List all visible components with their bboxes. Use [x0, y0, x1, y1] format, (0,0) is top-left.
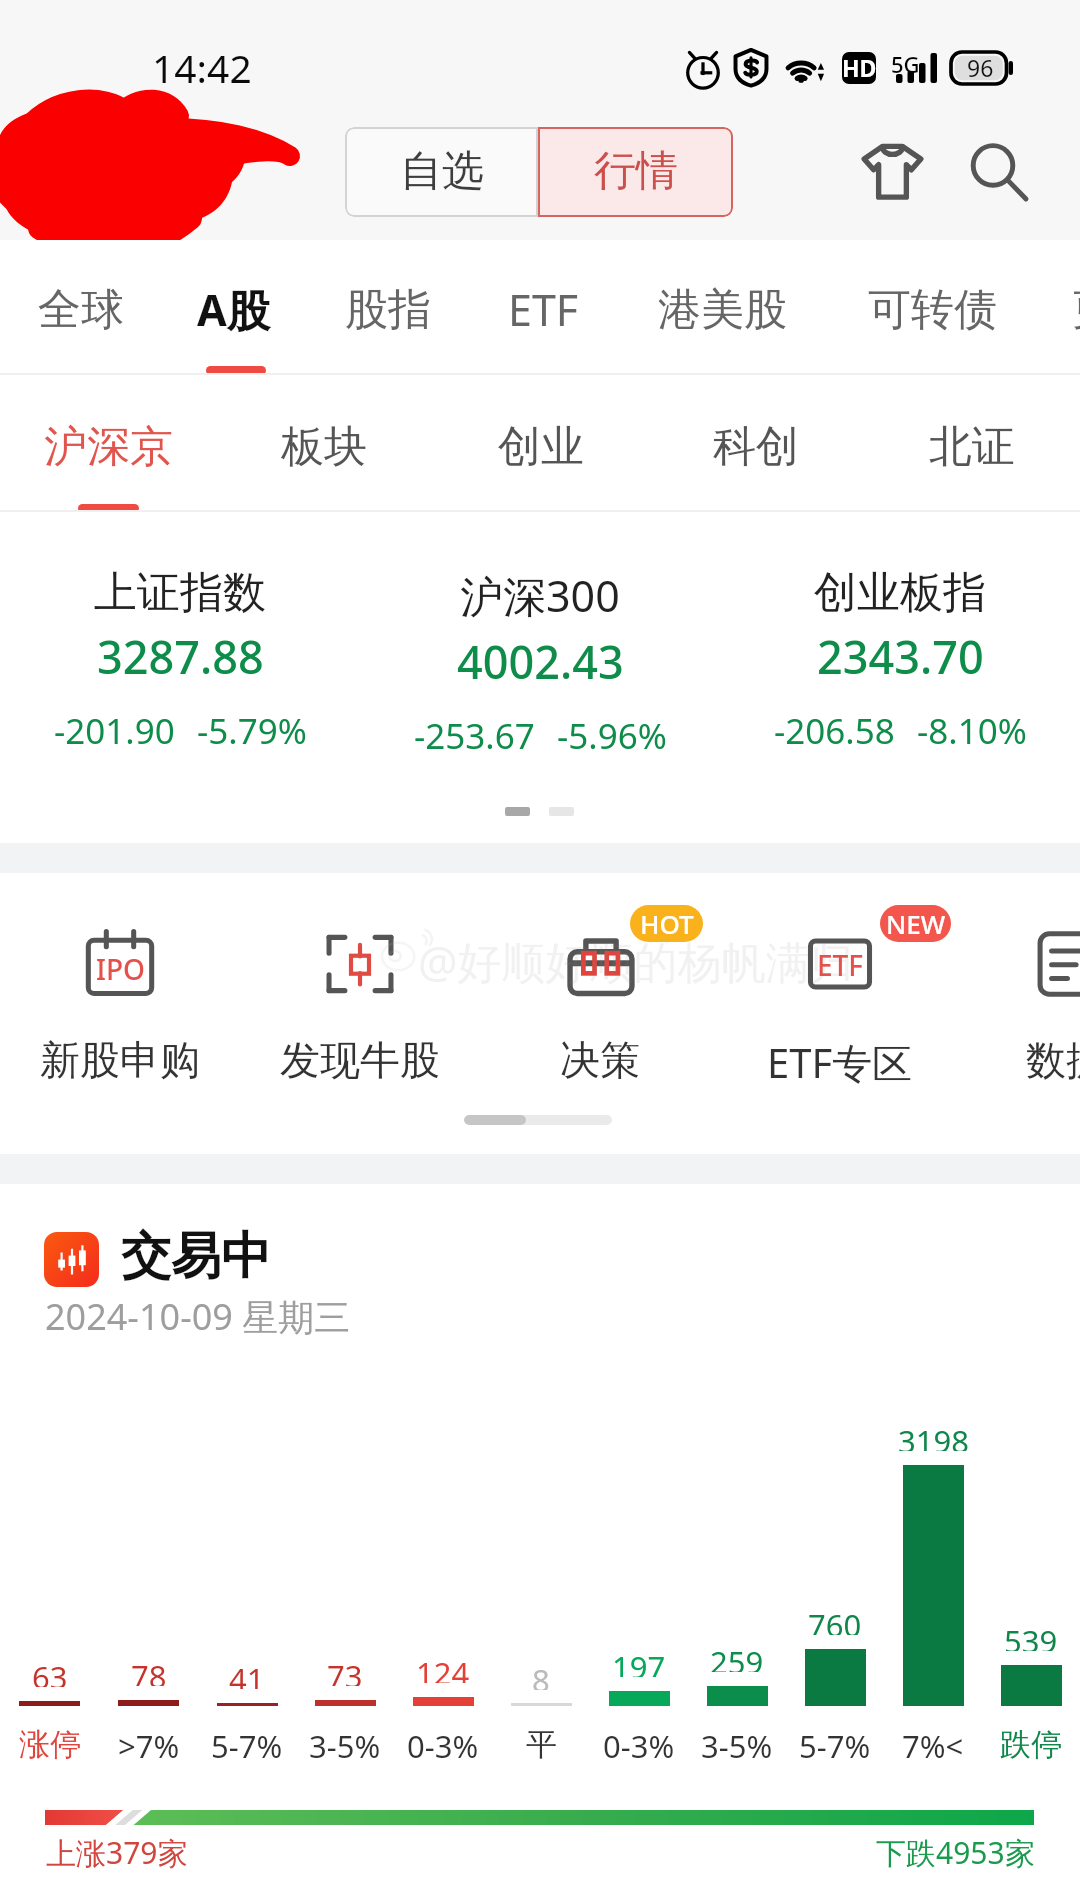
staticText: ETF — [817, 946, 864, 984]
button[interactable]: 数据 — [956, 928, 1080, 1085]
button[interactable]: 上证指数 — [0, 566, 360, 755]
staticText: 板块 — [281, 420, 367, 474]
staticText: -5.96% — [557, 712, 667, 760]
staticText: 行情 — [594, 145, 678, 198]
staticText: 沪深京 — [44, 420, 173, 474]
button[interactable]: Shop — [838, 118, 946, 226]
staticText: -8.10% — [917, 707, 1027, 755]
staticText: 259 — [710, 1641, 764, 1672]
staticText: 5G — [891, 49, 920, 79]
staticText: 全球 — [38, 283, 124, 337]
staticText: 平 — [526, 1725, 557, 1764]
staticText: 197 — [612, 1646, 666, 1677]
staticText: 3287.88 — [97, 626, 264, 687]
button[interactable]: 港美股 — [658, 240, 787, 375]
staticText: A股 — [197, 280, 270, 339]
button[interactable]: HOT — [490, 928, 710, 1085]
button[interactable]: 沪深300 — [360, 566, 720, 760]
staticText: HD — [842, 52, 876, 83]
staticText: -206.58 — [774, 707, 895, 755]
staticText: 跌停 — [1000, 1725, 1062, 1764]
button[interactable]: 沪深京 — [18, 375, 198, 512]
staticText: 124 — [416, 1652, 470, 1683]
staticText: 新股申购 — [40, 1035, 200, 1085]
staticText: ETF — [508, 280, 579, 339]
staticText: 73 — [327, 1655, 363, 1686]
staticText: -201.90 — [54, 707, 175, 755]
staticText: 7%< — [902, 1725, 964, 1767]
staticText: 3-5% — [309, 1725, 381, 1767]
staticText: 发现牛股 — [280, 1035, 440, 1085]
staticText: 创业板指 — [814, 566, 986, 620]
staticText: HOT — [640, 906, 694, 941]
staticText: 自选 — [400, 145, 484, 198]
button[interactable]: A股 — [197, 240, 270, 375]
staticText: 63 — [32, 1656, 68, 1687]
staticText: 14:42 — [152, 41, 252, 94]
staticText: >7% — [118, 1725, 180, 1767]
staticText: 3-5% — [701, 1725, 773, 1767]
staticText: 更 — [1072, 283, 1080, 337]
button[interactable]: Search — [945, 118, 1053, 226]
button[interactable]: 发现牛股 — [250, 928, 470, 1085]
staticText: 上证指数 — [94, 566, 266, 620]
staticText: ETF专区 — [767, 1035, 913, 1090]
staticText: NEW — [886, 906, 946, 941]
staticText: 760 — [808, 1604, 862, 1635]
button[interactable]: 更 — [1072, 240, 1080, 375]
staticText: 78 — [131, 1655, 167, 1686]
button[interactable]: 科创 — [666, 375, 846, 512]
button[interactable]: 创业板指 — [720, 566, 1080, 755]
staticText: 4002.43 — [457, 631, 624, 692]
staticText: 沪深300 — [460, 566, 620, 625]
staticText: 科创 — [713, 420, 799, 474]
staticText: 0-3% — [407, 1725, 479, 1767]
staticText: 3198 — [898, 1420, 969, 1451]
staticText: 数据 — [1026, 1035, 1080, 1085]
button[interactable]: 北证 — [882, 375, 1062, 512]
staticText: 5-7% — [799, 1725, 871, 1767]
staticText: 0-3% — [603, 1725, 675, 1767]
staticText: 539 — [1004, 1620, 1058, 1651]
staticText: 2343.70 — [817, 626, 984, 687]
staticText: IPO — [96, 950, 145, 988]
staticText: 创业 — [498, 420, 584, 474]
button[interactable]: 自选 — [345, 127, 538, 217]
staticText: 8 — [532, 1659, 550, 1690]
button[interactable]: 股指 — [345, 240, 431, 375]
button[interactable]: ETF — [730, 928, 950, 1090]
staticText: 下跌4953家 — [876, 1832, 1035, 1873]
staticText: 96 — [967, 52, 994, 83]
button[interactable]: 板块 — [234, 375, 414, 512]
staticText: @好顺好顺的杨帆满归 — [418, 931, 854, 991]
staticText: 北证 — [929, 420, 1015, 474]
staticText: 港美股 — [658, 283, 787, 337]
staticText: 可转债 — [868, 283, 997, 337]
button[interactable]: IPO — [10, 928, 230, 1085]
button[interactable]: 创业 — [451, 375, 631, 512]
staticText: -253.67 — [414, 712, 535, 760]
button[interactable]: 全球 — [38, 240, 124, 375]
button[interactable]: 行情 — [538, 127, 733, 217]
staticText: 交易中 — [121, 1225, 271, 1288]
staticText: 决策 — [560, 1035, 640, 1085]
button[interactable]: 可转债 — [868, 240, 997, 375]
staticText: -5.79% — [197, 707, 307, 755]
staticText: 2024-10-09 星期三 — [45, 1292, 351, 1341]
staticText: 上涨379家 — [46, 1832, 188, 1873]
button[interactable]: ETF — [508, 240, 579, 375]
staticText: 41 — [229, 1658, 265, 1689]
staticText: 涨停 — [19, 1725, 81, 1764]
staticText: 5-7% — [211, 1725, 283, 1767]
staticText: 股指 — [345, 283, 431, 337]
